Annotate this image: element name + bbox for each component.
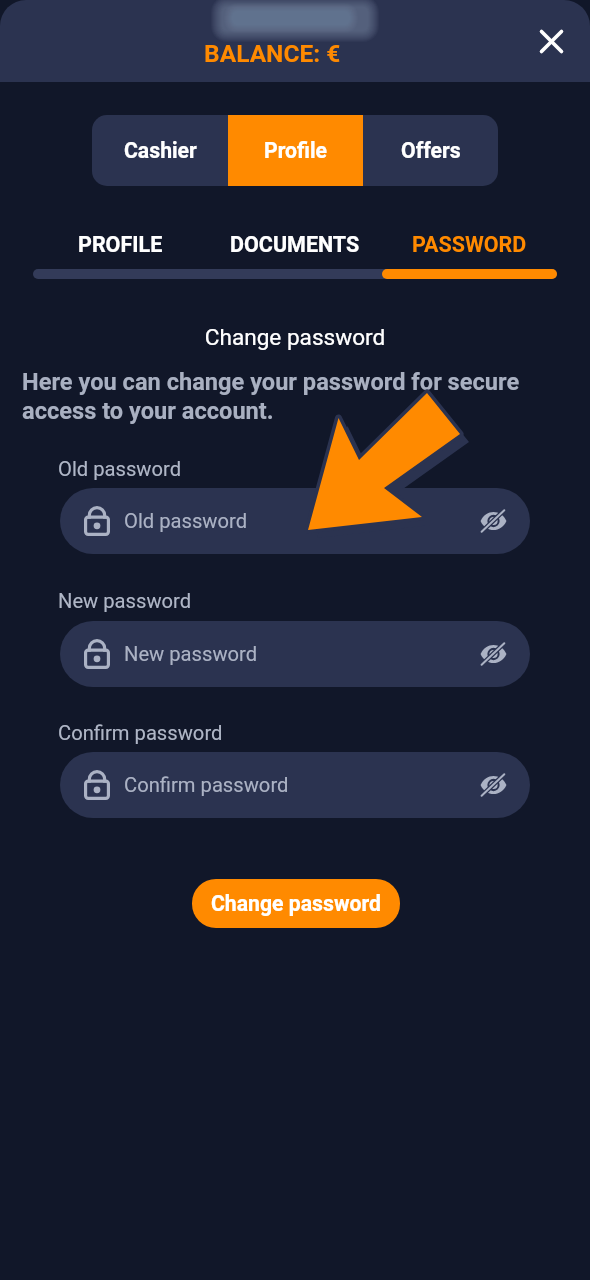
staticText: Old password (124, 509, 476, 533)
staticText: Change password (211, 891, 381, 916)
staticText: Change password (0, 324, 590, 350)
staticText: Cashier (124, 138, 197, 163)
button[interactable]: New password (60, 621, 530, 687)
button[interactable]: Show password (476, 637, 510, 671)
staticText: Here you can change your password for se… (22, 368, 520, 425)
other: Highlight pointer (0, 0, 590, 1280)
button[interactable]: Show password (476, 504, 510, 538)
button[interactable]: Old password (60, 488, 530, 554)
staticText: Confirm password (124, 773, 476, 797)
staticText: Confirm password (58, 721, 223, 745)
staticText: New password (58, 589, 192, 613)
staticText: PROFILE (78, 232, 163, 257)
button[interactable]: PASSWORD (382, 228, 557, 260)
button[interactable]: Profile (228, 115, 363, 186)
staticText: PASSWORD (412, 232, 527, 257)
button[interactable]: Confirm password (60, 752, 530, 818)
staticText: Old password (58, 457, 182, 481)
staticText: Offers (401, 138, 461, 163)
button[interactable]: Show password (476, 768, 510, 802)
staticText: DOCUMENTS (230, 232, 360, 257)
button[interactable]: Change password (192, 879, 400, 928)
button[interactable]: Offers (363, 115, 498, 186)
staticText: Profile (264, 138, 327, 163)
button[interactable]: PROFILE (33, 228, 207, 260)
staticText: New password (124, 642, 476, 666)
button[interactable]: DOCUMENTS (207, 228, 382, 260)
staticText: BALANCE: € (204, 39, 341, 68)
button[interactable]: Close (529, 19, 573, 63)
button[interactable]: Cashier (92, 115, 228, 186)
